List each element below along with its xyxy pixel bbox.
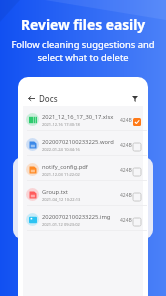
staticText: 424B — [120, 117, 132, 124]
staticText: Follow cleaning suggestions and select w… — [8, 38, 158, 64]
button[interactable]: Select file — [132, 142, 141, 151]
button[interactable]: Back — [25, 92, 38, 105]
staticText: 20200702100233225.img — [42, 213, 111, 221]
button[interactable]: Select file — [132, 217, 141, 226]
staticText: 2021_12_16_17_30_17.xlsx — [42, 113, 114, 121]
staticText: 2021-12-16 17:30:18 — [42, 122, 80, 127]
button[interactable]: Group.txt — [23, 181, 143, 206]
staticText: 2022-01-24 10:34:16 — [42, 147, 80, 152]
staticText: 2021-04_12 10:22:13 — [42, 197, 81, 202]
staticText: 424B — [120, 192, 132, 199]
staticText: 424B — [120, 217, 132, 224]
staticText: Docs — [39, 93, 58, 104]
button[interactable]: 2021_12_16_17_30_17.xlsx — [23, 106, 143, 131]
staticText: 20200702100233225.word — [42, 138, 114, 146]
staticText: 2021-12-03 11:22:02 — [42, 172, 80, 177]
button[interactable]: notify_config.pdf — [23, 156, 143, 181]
button[interactable]: Select file — [132, 192, 141, 201]
button[interactable]: Select file — [132, 117, 141, 126]
staticText: Group.txt — [42, 188, 68, 196]
staticText: 424B — [120, 142, 132, 149]
staticText: 424B — [120, 167, 132, 174]
button[interactable]: Filter — [128, 92, 141, 105]
staticText: Review files easily — [21, 15, 146, 34]
staticText: 2021-01-12 09:23:02 — [42, 222, 80, 227]
button[interactable]: 20200702100233225.img — [23, 206, 143, 231]
button[interactable]: 20200702100233225.word — [23, 131, 143, 156]
staticText: notify_config.pdf — [42, 163, 88, 171]
button[interactable]: Select file — [132, 167, 141, 176]
